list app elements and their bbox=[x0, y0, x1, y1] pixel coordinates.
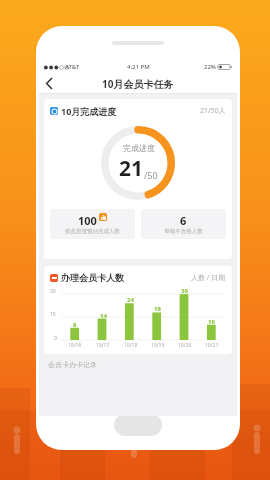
staticText: 24 bbox=[127, 296, 134, 304]
staticText: 按此进度预估完成人数 bbox=[65, 228, 120, 235]
staticText: 22% bbox=[204, 63, 216, 71]
staticText: AT&T bbox=[65, 63, 80, 71]
staticText: 4:21 PM bbox=[127, 63, 150, 71]
staticText: 完成进度 bbox=[123, 143, 155, 153]
staticText: 10月完成进度 bbox=[61, 105, 117, 117]
staticText: 10/18 bbox=[124, 342, 138, 349]
staticText: 6 bbox=[180, 213, 187, 228]
staticText: 10/19 bbox=[151, 342, 165, 349]
staticText: 30 bbox=[181, 287, 188, 295]
staticText: 14 bbox=[100, 312, 107, 320]
staticText: 8 bbox=[73, 321, 77, 329]
staticText: /50 bbox=[144, 169, 158, 181]
staticText: 30 bbox=[50, 288, 56, 295]
staticText: 10/17 bbox=[96, 342, 110, 349]
staticText: 人数 / 日期 bbox=[191, 273, 226, 283]
staticText: 10/20 bbox=[178, 342, 192, 349]
staticText: 10 bbox=[208, 318, 215, 326]
staticText: 15 bbox=[50, 311, 56, 318]
staticText: 10月会员卡任务 bbox=[102, 77, 174, 91]
staticText: 审核不合格人数 bbox=[164, 228, 203, 235]
staticText: 办理会员卡人数 bbox=[61, 272, 124, 283]
staticText: 10/21 bbox=[205, 342, 219, 349]
button[interactable]: 100 bbox=[50, 209, 135, 239]
button[interactable]: Back bbox=[39, 73, 60, 94]
staticText: 10/16 bbox=[68, 342, 82, 349]
button[interactable]: Home bbox=[114, 414, 162, 436]
staticText: 0 bbox=[54, 335, 57, 342]
staticText: 21 bbox=[119, 154, 144, 183]
staticText: 100 bbox=[78, 213, 97, 228]
button[interactable]: 6 bbox=[141, 209, 226, 239]
staticText: 会员卡办卡记录 bbox=[48, 360, 97, 369]
staticText: 18 bbox=[154, 305, 161, 313]
staticText: 21/50人 bbox=[200, 106, 226, 116]
